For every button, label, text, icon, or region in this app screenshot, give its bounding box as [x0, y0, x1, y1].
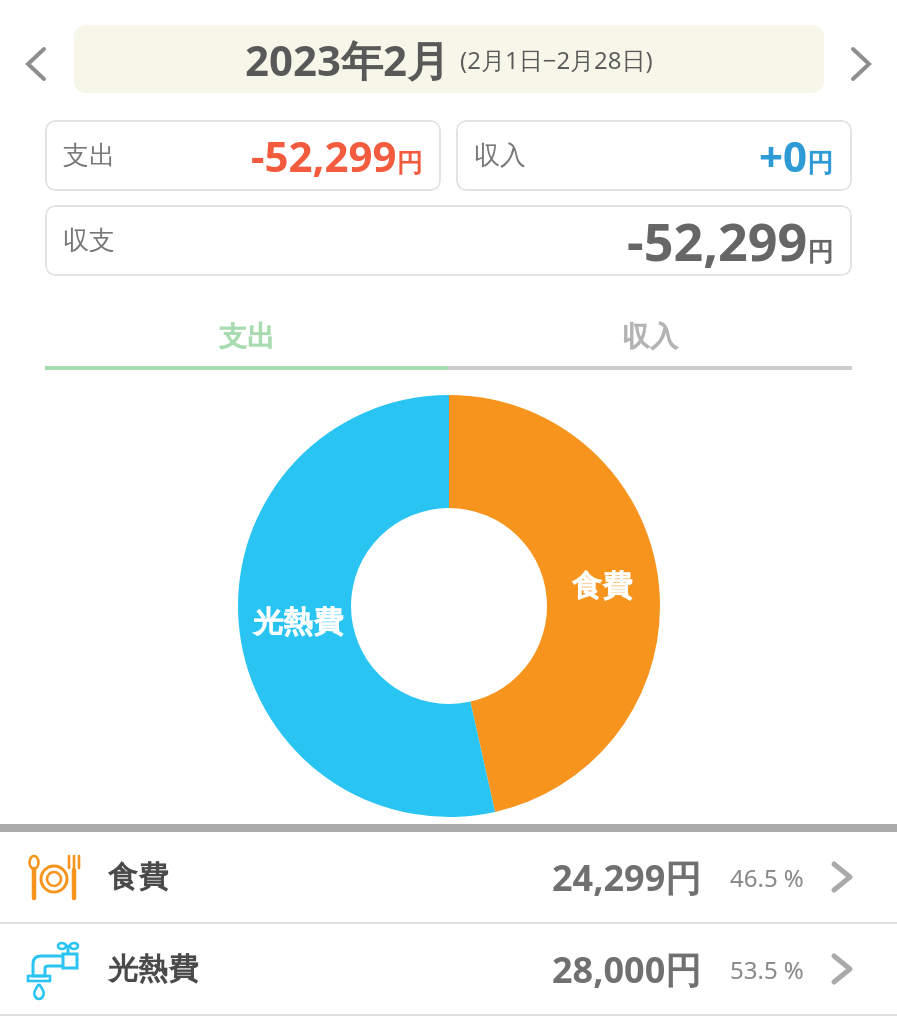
- staticText: 24,299円: [552, 853, 702, 902]
- staticText: 支出: [63, 139, 115, 172]
- staticText: 食費: [108, 858, 168, 896]
- staticText: -52,299円: [251, 127, 423, 184]
- button[interactable]: [843, 46, 879, 82]
- button[interactable]: 収支: [45, 205, 852, 276]
- staticText: 収支: [63, 224, 115, 257]
- button[interactable]: 収入: [448, 319, 852, 354]
- staticText: 光熱費: [253, 603, 343, 641]
- staticText: 2023年2月: [245, 31, 450, 88]
- staticText: 光熱費: [108, 950, 198, 988]
- staticText: 46.5 %: [730, 861, 804, 894]
- staticText: -52,299円: [627, 205, 834, 276]
- button[interactable]: 支出: [45, 120, 441, 191]
- staticText: +0円: [759, 127, 834, 184]
- staticText: 支出: [219, 319, 275, 354]
- button[interactable]: 食費: [0, 832, 897, 922]
- button[interactable]: 2023年2月: [74, 25, 824, 93]
- button[interactable]: 光熱費: [0, 924, 897, 1014]
- button[interactable]: 支出: [45, 319, 448, 354]
- staticText: (2月1日−2月28日): [460, 43, 653, 76]
- staticText: 収入: [622, 319, 678, 354]
- button[interactable]: 収入: [456, 120, 852, 191]
- staticText: 食費: [572, 567, 632, 605]
- button[interactable]: [18, 46, 54, 82]
- staticText: 収入: [474, 139, 526, 172]
- staticText: 28,000円: [552, 945, 702, 994]
- staticText: 53.5 %: [730, 953, 804, 986]
